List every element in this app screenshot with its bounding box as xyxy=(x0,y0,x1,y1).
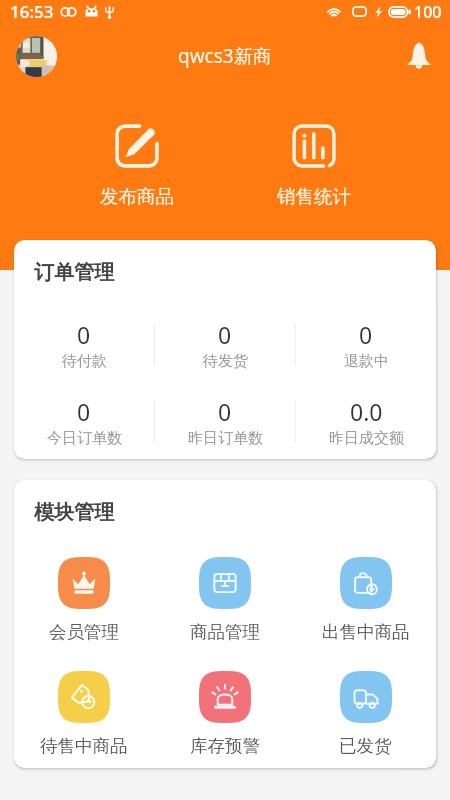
staticText: 销售统计 xyxy=(277,185,351,208)
staticText: 会员管理 xyxy=(49,621,119,643)
staticText: 0 xyxy=(77,396,91,427)
button[interactable]: 待售中商品 xyxy=(14,671,154,757)
staticText: 库存预警 xyxy=(190,735,260,757)
button[interactable]: 商品管理 xyxy=(154,557,295,643)
staticText: 16:53 xyxy=(10,0,54,23)
staticText: 待售中商品 xyxy=(40,735,128,757)
button[interactable]: 库存预警 xyxy=(154,671,295,757)
staticText: 发布商品 xyxy=(100,185,174,208)
button[interactable]: Notifications xyxy=(402,39,436,73)
staticText: 0 xyxy=(218,396,232,427)
staticText: 昨日成交额 xyxy=(329,429,404,448)
staticText: 模块管理 xyxy=(34,500,114,525)
staticText: 100 xyxy=(414,1,442,23)
staticText: 待发货 xyxy=(203,352,248,371)
button[interactable]: 0 xyxy=(14,319,154,371)
staticText: 已发货 xyxy=(339,735,392,757)
staticText: 昨日订单数 xyxy=(188,429,263,448)
staticText: 订单管理 xyxy=(34,260,114,285)
button[interactable]: 销售统计 xyxy=(225,118,402,208)
staticText: 0 xyxy=(77,319,91,350)
button[interactable]: 已发货 xyxy=(295,671,436,757)
button[interactable]: 0 xyxy=(155,319,295,371)
staticText: 商品管理 xyxy=(190,621,260,643)
staticText: 出售中商品 xyxy=(322,621,410,643)
button[interactable]: 0 xyxy=(155,396,295,448)
button[interactable]: 出售中商品 xyxy=(295,557,436,643)
button[interactable]: 0 xyxy=(296,319,436,371)
button[interactable]: 发布商品 xyxy=(48,118,225,208)
staticText: 0.0 xyxy=(350,396,383,427)
staticText: 待付款 xyxy=(62,352,107,371)
button[interactable]: 0 xyxy=(14,396,154,448)
button[interactable]: 会员管理 xyxy=(14,557,154,643)
staticText: 0 xyxy=(359,319,373,350)
button[interactable]: 0.0 xyxy=(296,396,436,448)
staticText: 今日订单数 xyxy=(47,429,122,448)
button[interactable]: Profile xyxy=(16,36,57,77)
staticText: qwcs3新商 xyxy=(178,43,272,69)
staticText: 0 xyxy=(218,319,232,350)
staticText: 退款中 xyxy=(344,352,389,371)
